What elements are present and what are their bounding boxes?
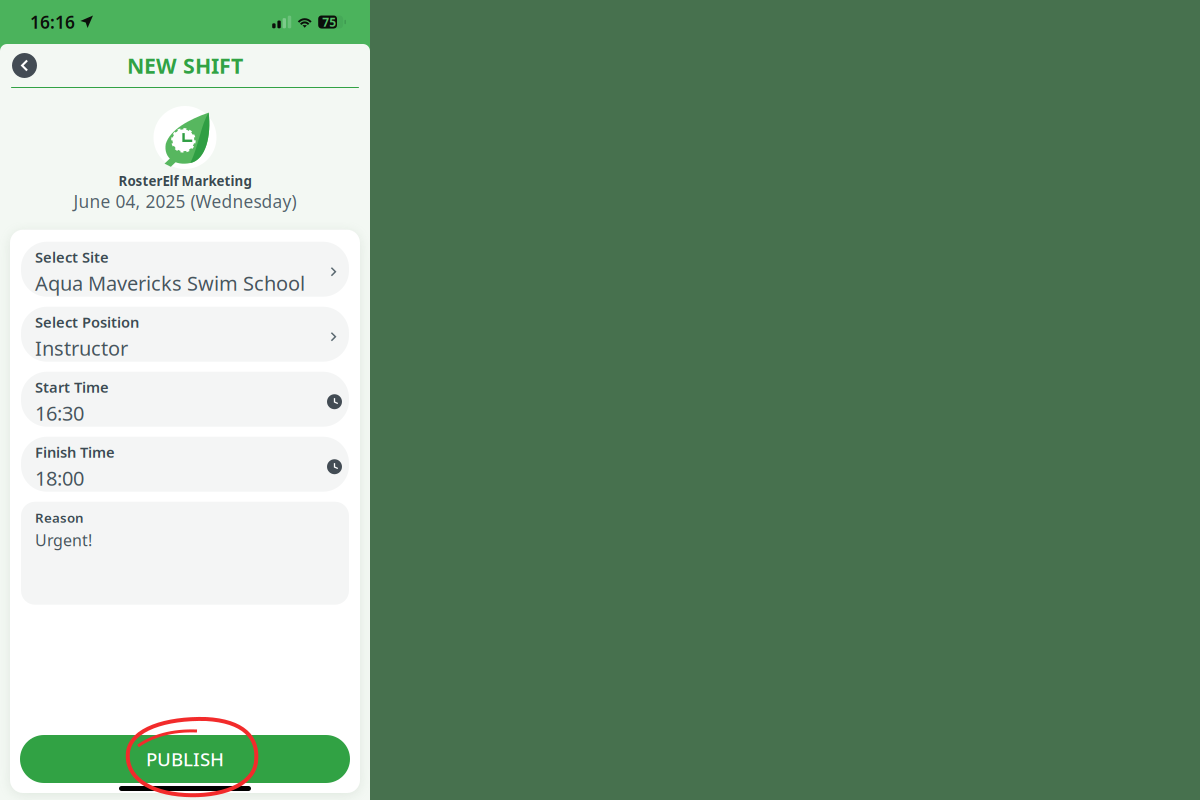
button[interactable]: Select Site [21, 242, 349, 297]
staticText: 18:00 [35, 465, 84, 491]
staticText: 75 [322, 14, 336, 30]
staticText: Aqua Mavericks Swim School [35, 270, 305, 296]
staticText: Finish Time [35, 442, 115, 462]
staticText: Select Position [35, 312, 139, 332]
staticText: Select Site [35, 247, 109, 267]
staticText: Instructor [35, 335, 128, 361]
staticText: RosterElf Marketing [118, 172, 251, 190]
staticText: 16:16 [30, 10, 75, 33]
button[interactable]: Start Time [21, 372, 349, 427]
staticText: 16:30 [35, 400, 84, 426]
staticText: Reason [35, 509, 84, 526]
staticText: NEW SHIFT [127, 51, 243, 80]
button[interactable]: Finish Time [21, 437, 349, 492]
staticText: June 04, 2025 (Wednesday) [73, 190, 296, 213]
button[interactable]: Reason [21, 502, 349, 605]
button[interactable]: Back [12, 53, 37, 78]
staticText: Start Time [35, 377, 109, 397]
staticText: PUBLISH [146, 747, 224, 771]
button[interactable]: PUBLISH [20, 735, 350, 783]
staticText: Urgent! [35, 529, 92, 551]
button[interactable]: Select Position [21, 307, 349, 362]
